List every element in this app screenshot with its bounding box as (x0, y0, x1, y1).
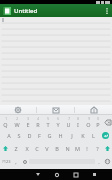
button[interactable]: App icon (3, 7, 11, 15)
staticText: 2 (16, 117, 18, 121)
staticText: 6 (57, 117, 59, 121)
button[interactable]: Backspace (103, 116, 112, 129)
button[interactable]: S (14, 129, 24, 142)
button[interactable]: Z (10, 142, 21, 155)
staticText: 4 (37, 117, 39, 121)
button[interactable]: K (77, 129, 88, 142)
button[interactable]: C (32, 142, 42, 155)
button[interactable]: Recents (66, 169, 85, 180)
staticText: D (27, 132, 32, 139)
button[interactable]: Home (47, 169, 66, 180)
button[interactable]: Emoji (37, 105, 74, 115)
staticText: Q (3, 121, 8, 128)
button[interactable]: F (34, 129, 44, 142)
staticText: N (65, 145, 70, 152)
button[interactable]: V (42, 142, 52, 155)
button[interactable]: , (12, 155, 20, 168)
button[interactable]: 1 (0, 116, 11, 129)
button[interactable]: Voice input (75, 105, 112, 115)
staticText: , (15, 158, 17, 165)
button[interactable]: ? (92, 142, 102, 155)
button[interactable]: 0 (93, 116, 103, 129)
button[interactable]: ! (82, 142, 92, 155)
staticText: 8 (77, 117, 79, 121)
button[interactable]: H (55, 129, 66, 142)
staticText: R (36, 121, 40, 128)
staticText: . (98, 158, 100, 165)
staticText: B (55, 145, 59, 152)
button[interactable]: J (66, 129, 77, 142)
staticText: 7 (68, 117, 70, 121)
button[interactable]: D (24, 129, 34, 142)
button[interactable]: Back (28, 169, 47, 180)
staticText: X (25, 145, 29, 152)
staticText: ?123 (2, 159, 11, 164)
button[interactable]: B (52, 142, 62, 155)
staticText: K (81, 132, 85, 139)
staticText: ! (86, 145, 88, 152)
button[interactable]: More options (102, 4, 112, 17)
button[interactable]: M (72, 142, 82, 155)
staticText: 3 (27, 117, 29, 121)
staticText: T (46, 121, 50, 128)
staticText: L (92, 132, 95, 139)
button[interactable]: 9 (83, 116, 93, 129)
button[interactable]: 6 (53, 116, 63, 129)
button[interactable]: Voice input (20, 155, 29, 168)
staticText: O (86, 121, 91, 128)
staticText: M (75, 145, 80, 152)
staticText: 0 (97, 117, 99, 121)
button[interactable]: Emoji (103, 155, 112, 168)
button[interactable]: X (21, 142, 32, 155)
staticText: 1 (5, 117, 7, 121)
staticText: 9 (88, 117, 90, 121)
button[interactable]: Enter (99, 129, 112, 142)
staticText: V (45, 145, 49, 152)
staticText: S (17, 132, 21, 139)
staticText: G (47, 132, 52, 139)
staticText: 5 (47, 117, 49, 121)
staticText: Z (14, 145, 18, 152)
button[interactable]: 7 (63, 116, 73, 129)
button[interactable]: G (44, 129, 55, 142)
staticText: J (71, 132, 73, 139)
button[interactable]: A (4, 129, 14, 142)
button[interactable]: Shift (0, 142, 10, 155)
staticText: Untitled (14, 7, 38, 15)
button[interactable]: N (62, 142, 72, 155)
staticText: H (58, 132, 63, 139)
button[interactable]: 8 (73, 116, 83, 129)
staticText: U (66, 121, 71, 128)
button[interactable]: 3 (22, 116, 33, 129)
staticText: E (26, 121, 30, 128)
button[interactable]: 5 (43, 116, 53, 129)
button[interactable]: Symbols (0, 155, 12, 168)
staticText: A (7, 132, 11, 139)
button[interactable]: Settings (0, 105, 36, 115)
button[interactable]: L (88, 129, 99, 142)
staticText: C (35, 145, 39, 152)
button[interactable]: 2 (11, 116, 22, 129)
staticText: ? (96, 145, 99, 152)
staticText: F (38, 132, 41, 139)
staticText: W (14, 121, 20, 128)
button[interactable]: Shift (102, 142, 112, 155)
button[interactable]: 4 (33, 116, 43, 129)
button[interactable]: . (95, 155, 103, 168)
button[interactable]: Menu (85, 169, 104, 180)
staticText: I (77, 121, 79, 128)
staticText: Y (56, 121, 60, 128)
staticText: P (96, 121, 100, 128)
